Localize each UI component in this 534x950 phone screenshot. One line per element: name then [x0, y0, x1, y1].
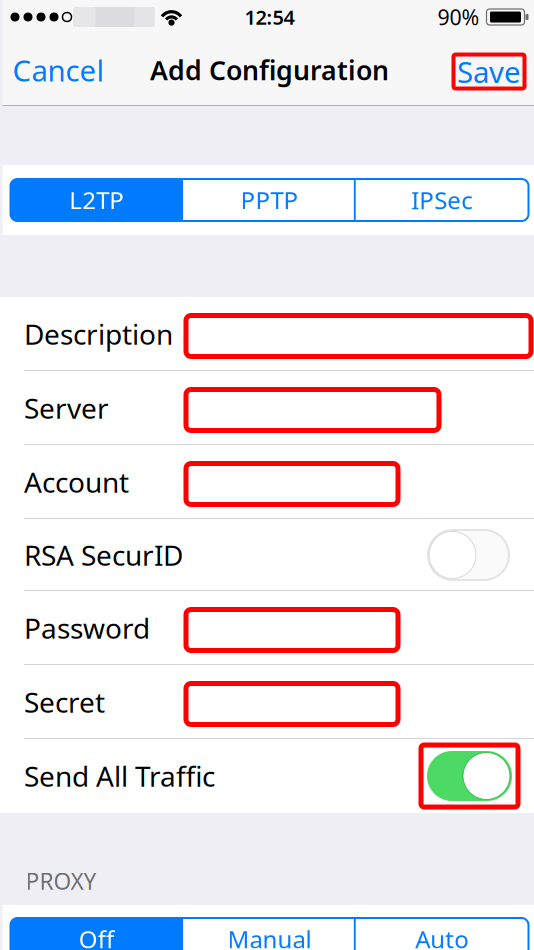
staticText: Send All Traffic [24, 757, 215, 795]
staticText: PPTP [240, 184, 298, 216]
button[interactable]: Secret [186, 683, 398, 724]
button[interactable]: Auto [356, 918, 528, 950]
staticText: Off [79, 923, 115, 950]
staticText: L2TP [69, 184, 124, 216]
staticText: 90% [437, 3, 479, 31]
staticText: 12:54 [244, 4, 294, 30]
staticText: RSA SecurID [24, 536, 183, 574]
staticText: Auto [415, 923, 469, 950]
button[interactable]: Password [186, 609, 398, 650]
staticText: Account [24, 463, 129, 501]
staticText: IPSec [411, 184, 473, 216]
staticText: Save [457, 52, 521, 91]
button[interactable]: L2TP [10, 179, 183, 221]
staticText: Cancel [12, 50, 104, 89]
staticText: Add Configuration [150, 52, 389, 88]
staticText: Description [24, 315, 173, 353]
button[interactable]: Cancel [2, 34, 114, 105]
staticText: Secret [24, 683, 105, 721]
staticText: Password [24, 609, 150, 647]
button[interactable]: IPSec [356, 179, 528, 221]
button[interactable]: Server [186, 389, 439, 430]
button[interactable]: Manual [183, 918, 356, 950]
staticText: Server [24, 389, 109, 427]
staticText: Manual [227, 923, 311, 950]
button[interactable]: Save [453, 51, 534, 88]
button[interactable]: Send All Traffic [421, 745, 518, 807]
button[interactable]: PPTP [183, 179, 356, 221]
staticText: PROXY [25, 866, 96, 896]
button[interactable]: Off [10, 918, 183, 950]
button[interactable]: Description [186, 315, 531, 356]
button[interactable]: RSA SecurID [428, 530, 509, 580]
button[interactable]: Account [186, 463, 398, 504]
